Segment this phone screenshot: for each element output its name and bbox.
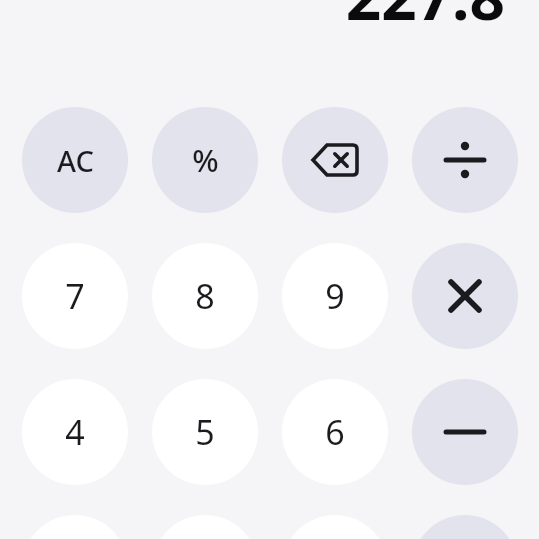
staticText: %: [192, 139, 219, 181]
button[interactable]: 1: [22, 515, 128, 539]
button[interactable]: 8: [152, 243, 258, 349]
button[interactable]: AC: [22, 107, 128, 213]
button[interactable]: %: [152, 107, 258, 213]
staticText: 5: [195, 409, 215, 455]
staticText: AC: [57, 141, 94, 180]
button[interactable]: 5: [152, 379, 258, 485]
button[interactable]: 7: [22, 243, 128, 349]
button[interactable]: Subtract: [412, 379, 518, 485]
staticText: 6: [325, 409, 345, 455]
button[interactable]: Divide: [412, 107, 518, 213]
staticText: 7: [65, 273, 85, 319]
staticText: 8: [195, 273, 215, 319]
button[interactable]: Multiply: [412, 243, 518, 349]
staticText: 227.8: [345, 0, 505, 34]
button[interactable]: 2: [152, 515, 258, 539]
button[interactable]: 6: [282, 379, 388, 485]
button[interactable]: 3: [282, 515, 388, 539]
staticText: 4: [65, 409, 85, 455]
staticText: 9: [325, 273, 345, 319]
button[interactable]: 4: [22, 379, 128, 485]
button[interactable]: Add: [412, 515, 518, 539]
button[interactable]: Backspace: [282, 107, 388, 213]
button[interactable]: 9: [282, 243, 388, 349]
